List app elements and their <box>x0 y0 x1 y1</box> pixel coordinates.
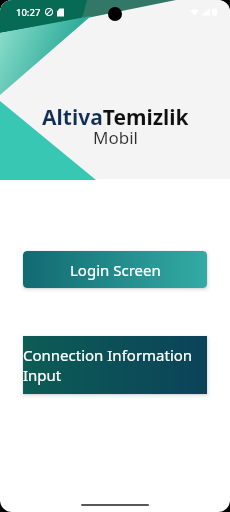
button[interactable]: Login Screen <box>23 251 207 288</box>
staticText: 10:27 <box>16 6 41 19</box>
staticText: Connection Information Input <box>23 345 207 385</box>
button[interactable]: Connection Information Input <box>23 336 207 394</box>
staticText: Login Screen <box>70 260 161 280</box>
staticText: AltivaTemizlik <box>42 103 189 132</box>
staticText: Mobil <box>93 126 138 149</box>
